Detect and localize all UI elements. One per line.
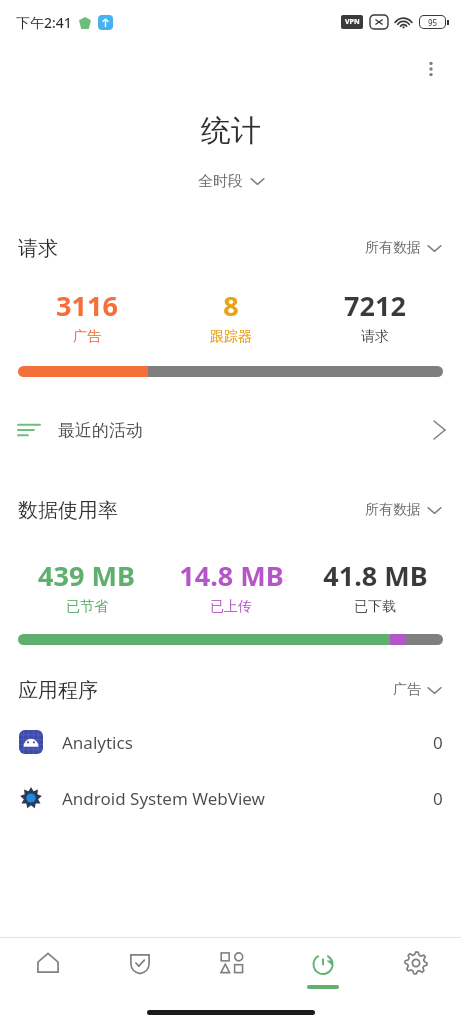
staticText: 广告 bbox=[73, 328, 101, 346]
staticText: 全时段 bbox=[198, 172, 243, 191]
staticText: 439 MB bbox=[38, 557, 135, 594]
staticText: 7212 bbox=[344, 287, 406, 324]
staticText: 8 bbox=[223, 287, 239, 324]
staticText: 41.8 MB bbox=[323, 557, 428, 594]
staticText: 已上传 bbox=[210, 598, 252, 616]
staticText: 0 bbox=[433, 731, 443, 754]
button[interactable]: Analytics bbox=[0, 725, 461, 759]
staticText: 请求 bbox=[18, 236, 58, 261]
button[interactable]: Android System WebView bbox=[0, 781, 461, 815]
button[interactable]: 广告 bbox=[385, 677, 449, 703]
button[interactable]: Settings bbox=[369, 938, 461, 1000]
staticText: 已下载 bbox=[354, 598, 396, 616]
staticText: 数据使用率 bbox=[18, 498, 118, 523]
button[interactable]: 最近的活动 bbox=[0, 407, 461, 453]
staticText: 请求 bbox=[361, 328, 389, 346]
staticText: 广告 bbox=[393, 681, 421, 699]
button[interactable]: Apps bbox=[185, 938, 277, 1000]
staticText: 95 bbox=[428, 17, 438, 28]
staticText: 3116 bbox=[56, 287, 118, 324]
staticText: 14.8 MB bbox=[179, 557, 284, 594]
button[interactable]: 所有数据 bbox=[357, 497, 449, 523]
staticText: Analytics bbox=[62, 731, 133, 754]
staticText: 所有数据 bbox=[365, 239, 421, 257]
button[interactable]: Protection bbox=[93, 938, 185, 1000]
staticText: 下午2:41 bbox=[16, 13, 72, 32]
staticText: Android System WebView bbox=[62, 787, 265, 810]
button[interactable]: 全时段 bbox=[188, 168, 274, 195]
button[interactable]: Home bbox=[0, 938, 93, 1000]
staticText: 0 bbox=[433, 787, 443, 810]
staticText: VPN bbox=[345, 17, 360, 27]
button[interactable]: 所有数据 bbox=[357, 235, 449, 261]
button[interactable]: More options bbox=[411, 52, 451, 86]
staticText: 最近的活动 bbox=[58, 420, 143, 441]
staticText: 统计 bbox=[201, 112, 261, 150]
staticText: 所有数据 bbox=[365, 501, 421, 519]
staticText: 跟踪器 bbox=[210, 328, 252, 346]
staticText: 应用程序 bbox=[18, 678, 98, 703]
staticText: 已节省 bbox=[66, 598, 108, 616]
button[interactable]: Statistics bbox=[277, 938, 369, 1000]
